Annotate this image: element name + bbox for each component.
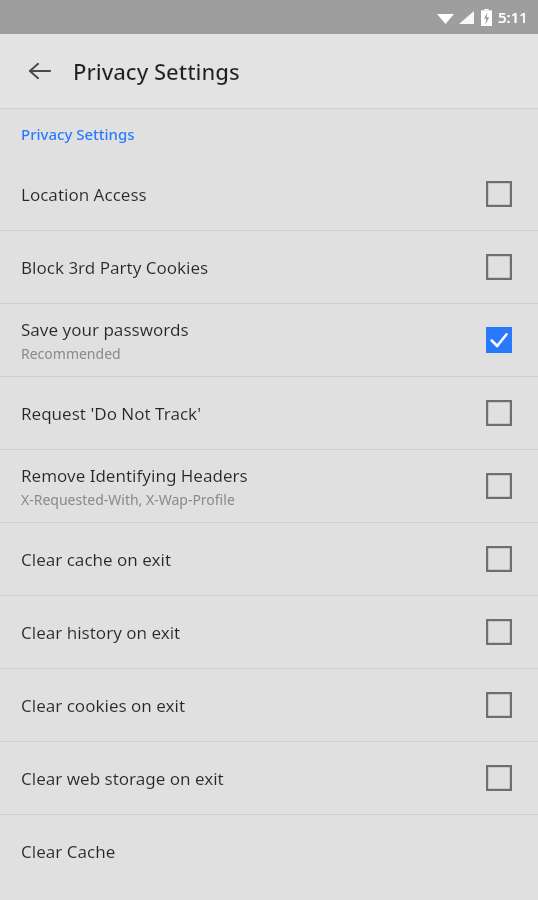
other: Unchecked <box>486 692 512 718</box>
button[interactable]: Clear cookies on exit <box>0 669 538 741</box>
staticText: Clear cookies on exit <box>21 694 186 717</box>
staticText: Recommended <box>21 344 121 363</box>
other: Checked <box>486 327 512 353</box>
staticText: Request 'Do Not Track' <box>21 402 201 425</box>
staticText: Location Access <box>21 183 147 206</box>
other: Unchecked <box>486 546 512 572</box>
staticText: Privacy Settings <box>21 124 135 144</box>
button[interactable]: Request 'Do Not Track' <box>0 377 538 449</box>
staticText: Block 3rd Party Cookies <box>21 256 209 279</box>
staticText: Clear history on exit <box>21 621 181 644</box>
staticText: Remove Identifying Headers <box>21 464 248 487</box>
staticText: 5:11 <box>498 7 528 27</box>
button[interactable]: Clear web storage on exit <box>0 742 538 814</box>
staticText: Save your passwords <box>21 318 189 341</box>
other: Unchecked <box>486 765 512 791</box>
staticText: Privacy Settings <box>73 56 240 86</box>
button[interactable]: Clear Cache <box>0 815 538 887</box>
other: Unchecked <box>486 254 512 280</box>
button[interactable]: Location Access <box>0 158 538 230</box>
button[interactable]: Block 3rd Party Cookies <box>0 231 538 303</box>
other: Unchecked <box>486 400 512 426</box>
other: Unchecked <box>486 619 512 645</box>
button[interactable]: Clear cache on exit <box>0 523 538 595</box>
button[interactable]: Back <box>16 47 64 95</box>
other: Unchecked <box>486 181 512 207</box>
button[interactable]: Remove Identifying Headers <box>0 450 538 522</box>
other: Unchecked <box>486 473 512 499</box>
button[interactable]: Save your passwords <box>0 304 538 376</box>
staticText: X-Requested-With, X-Wap-Profile <box>21 490 235 509</box>
staticText: Clear Cache <box>21 840 116 863</box>
staticText: Clear cache on exit <box>21 548 172 571</box>
staticText: Clear web storage on exit <box>21 767 224 790</box>
button[interactable]: Clear history on exit <box>0 596 538 668</box>
